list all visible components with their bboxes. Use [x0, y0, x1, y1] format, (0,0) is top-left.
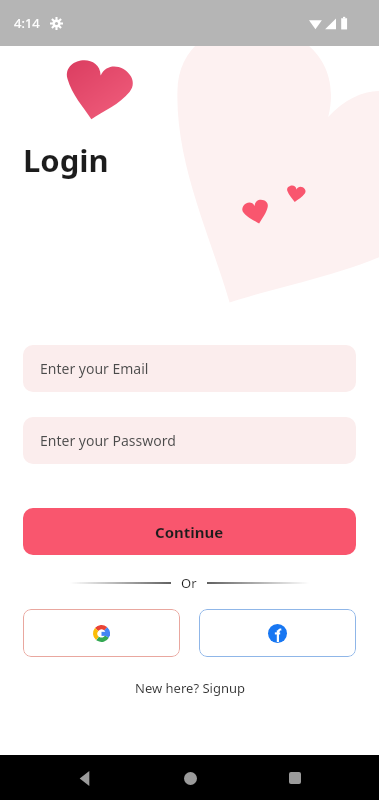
button[interactable]: Enter your Password [23, 417, 356, 464]
button[interactable]: Recent apps [273, 756, 317, 800]
button[interactable]: Continue [23, 508, 356, 555]
staticText: 4:14 [14, 14, 40, 32]
button[interactable]: Home [168, 756, 212, 800]
staticText: Login [23, 139, 109, 181]
staticText: Enter your Password [40, 431, 176, 450]
staticText: Or [181, 574, 197, 592]
staticText: Enter your Email [40, 359, 149, 378]
button[interactable]: Back [62, 756, 106, 800]
button[interactable]: Sign in with Facebook [199, 609, 356, 657]
button[interactable]: New here? Signup [127, 675, 253, 701]
button[interactable]: Sign in with Google [23, 609, 180, 657]
button[interactable]: Enter your Email [23, 345, 356, 392]
staticText: Continue [155, 522, 224, 542]
